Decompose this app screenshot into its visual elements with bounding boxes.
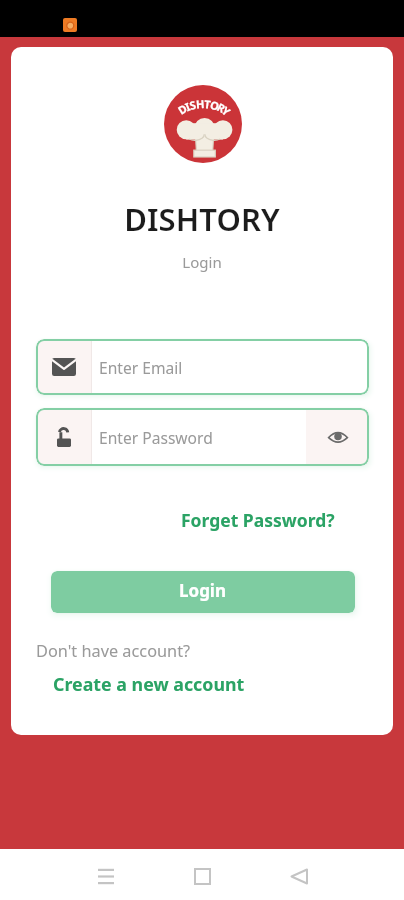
staticText: DISHTORY xyxy=(124,198,280,240)
staticText: Create a new account xyxy=(53,672,245,696)
staticText: Login xyxy=(182,252,222,272)
staticText: Enter Password xyxy=(99,427,213,448)
button[interactable]: Enter Password xyxy=(36,408,369,466)
button[interactable]: Create a new account xyxy=(49,668,249,700)
button[interactable]: Enter Email xyxy=(36,339,369,395)
button[interactable]: Back xyxy=(275,852,323,900)
button[interactable]: Home xyxy=(178,852,226,900)
staticText: Login xyxy=(179,579,227,602)
button[interactable]: Forget Password? xyxy=(177,504,339,536)
button[interactable]: Login xyxy=(51,571,355,613)
staticText: Enter Email xyxy=(99,357,183,378)
staticText: Forget Password? xyxy=(181,508,335,532)
button[interactable]: Show password xyxy=(306,408,369,466)
button[interactable]: Recents xyxy=(82,852,130,900)
staticText: Don't have account? xyxy=(36,640,191,662)
